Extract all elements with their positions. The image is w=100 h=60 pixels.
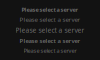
staticText: Please select a server [19,37,80,45]
staticText: Please select a server [15,26,84,35]
staticText: Please select a server [23,47,76,54]
staticText: Please select a server [19,15,80,24]
staticText: Please select a server [21,6,78,13]
